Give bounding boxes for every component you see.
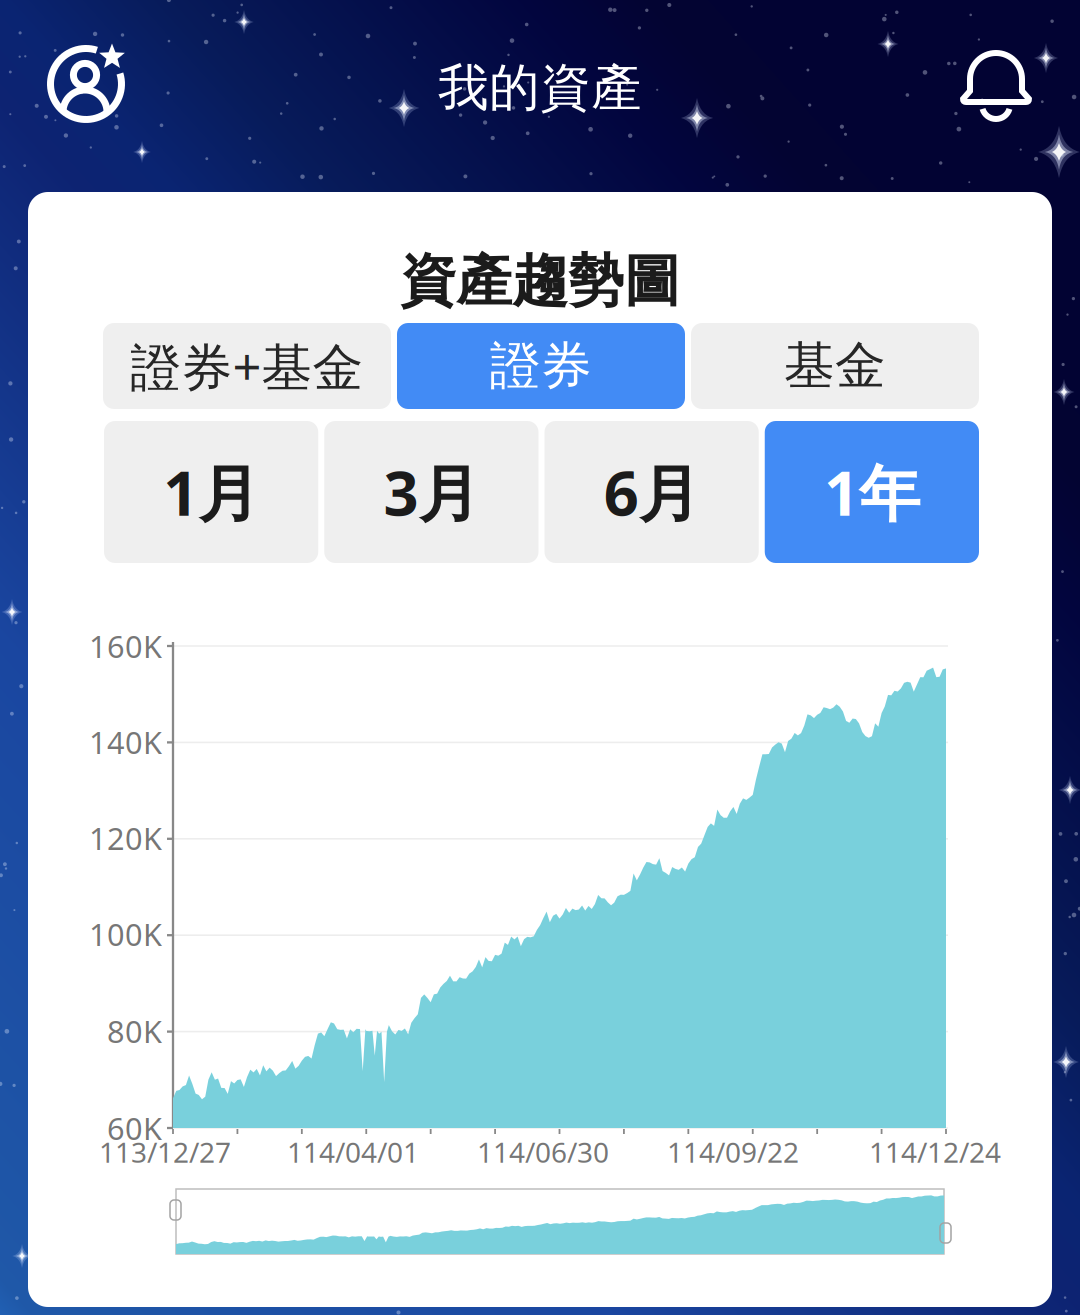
button[interactable]: 1年 [765,421,979,563]
staticText: 114/12/24 [869,1133,1001,1171]
staticText: 1月 [163,451,259,533]
staticText: 114/09/22 [667,1133,799,1171]
staticText: 114/04/01 [287,1133,419,1171]
staticText: 證券+基金 [130,332,363,400]
staticText: 100K [89,914,162,954]
staticText: 160K [89,626,162,666]
staticText: 114/06/30 [477,1133,609,1171]
button[interactable]: 3月 [324,421,538,563]
staticText: 我的資產 [438,57,642,119]
staticText: 證券 [490,335,592,397]
button[interactable]: Adjust range [940,1223,951,1243]
staticText: 1年 [824,451,920,533]
staticText: 80K [107,1011,162,1051]
button[interactable]: 6月 [544,421,759,563]
button[interactable]: 基金 [691,323,979,409]
staticText: 基金 [784,335,886,397]
staticText: 資產趨勢圖 [400,247,680,315]
staticText: 140K [89,722,162,762]
button[interactable]: 1月 [104,421,318,563]
button[interactable]: Adjust range [170,1200,181,1220]
staticText: 3月 [383,451,479,533]
button[interactable]: Notifications [930,24,1050,154]
staticText: 6月 [604,451,700,533]
staticText: 120K [89,818,162,858]
staticText: 113/12/27 [99,1133,231,1171]
button[interactable]: 證券 [397,323,685,409]
button[interactable]: Profile [30,26,160,156]
button[interactable]: 證券+基金 [103,323,391,409]
staticText: 60K [107,1108,162,1148]
